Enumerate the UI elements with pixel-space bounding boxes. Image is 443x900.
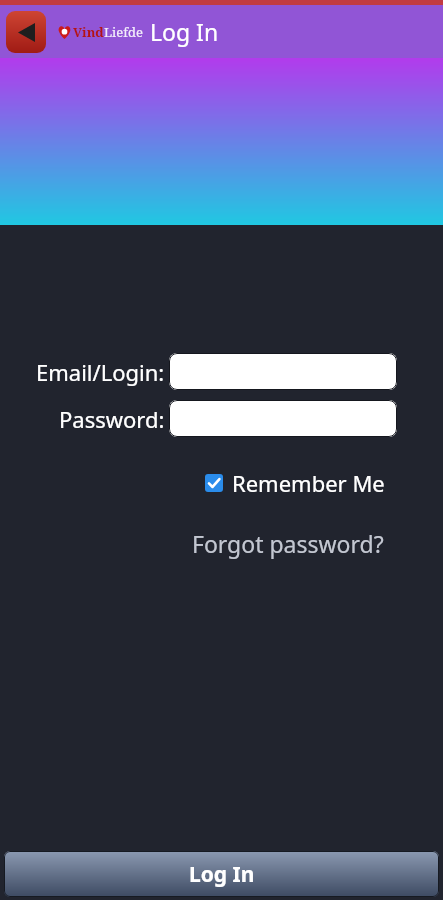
- staticText: Liefde: [104, 23, 143, 41]
- staticText: Forgot password?: [192, 528, 384, 559]
- staticText: Vind: [73, 23, 104, 41]
- button[interactable]: Remember Me: [205, 468, 385, 498]
- staticText: Remember Me: [232, 468, 385, 498]
- staticText: Log In: [150, 16, 219, 47]
- button[interactable]: [169, 400, 397, 437]
- button[interactable]: Log In: [4, 851, 439, 897]
- staticText: Password:: [59, 404, 165, 434]
- staticText: Log In: [189, 860, 255, 889]
- button[interactable]: [6, 11, 46, 53]
- staticText: Email/Login:: [36, 357, 165, 387]
- button[interactable]: Forgot password?: [192, 528, 384, 559]
- button[interactable]: [169, 353, 397, 390]
